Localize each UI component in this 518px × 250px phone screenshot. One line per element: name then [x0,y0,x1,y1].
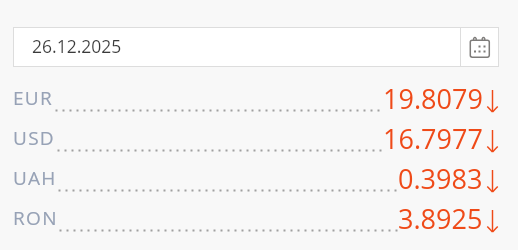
staticText: 26.12.2025 [32,34,122,58]
staticText: 0.3983 [398,160,483,197]
staticText: 3.8925 [398,200,483,237]
staticText: RON [13,205,58,231]
button[interactable]: 26.12.2025 [13,27,460,67]
button[interactable]: UAH [0,158,518,198]
button[interactable]: USD [0,118,518,158]
button[interactable]: EUR [0,78,518,118]
staticText: EUR [13,85,54,111]
staticText: 19.8079 [383,80,483,117]
button[interactable]: Pick date [460,27,499,67]
staticText: USD [13,125,56,151]
staticText: UAH [13,165,57,191]
staticText: 16.7977 [383,120,483,157]
button[interactable]: RON [0,198,518,238]
